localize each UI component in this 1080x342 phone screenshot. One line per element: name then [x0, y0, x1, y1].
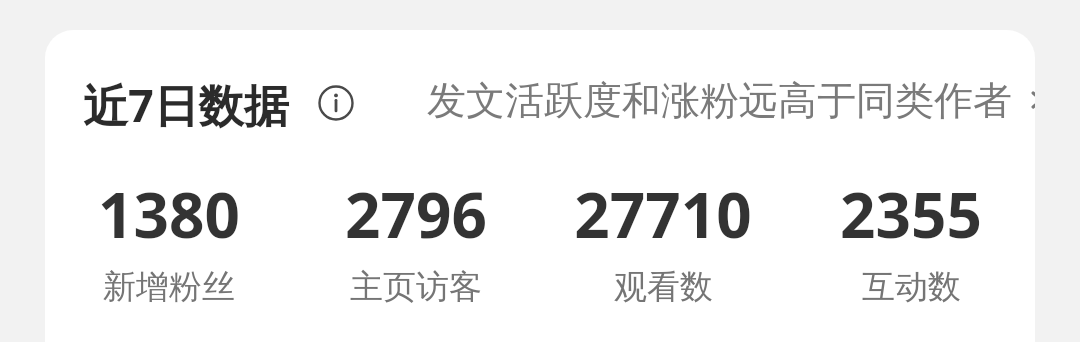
- staticText: 2355: [840, 172, 982, 256]
- button[interactable]: 发文活跃度和涨粉远高于同类作者: [427, 30, 1035, 170]
- staticText: 新增粉丝: [103, 266, 235, 308]
- button[interactable]: 27710: [539, 170, 787, 308]
- staticText: 近7日数据: [83, 74, 289, 135]
- staticText: 观看数: [614, 266, 713, 308]
- staticText: 发文活跃度和涨粉远高于同类作者: [427, 76, 1012, 125]
- button[interactable]: 2796: [292, 170, 539, 308]
- staticText: 主页访客: [350, 266, 482, 308]
- staticText: 互动数: [862, 266, 961, 308]
- staticText: 1380: [98, 172, 240, 256]
- staticText: 27710: [574, 172, 752, 256]
- button[interactable]: 2355: [787, 170, 1035, 308]
- button[interactable]: 近7日数据: [45, 30, 1035, 342]
- button[interactable]: 1380: [45, 170, 292, 308]
- button[interactable]: 说明: [316, 83, 356, 123]
- staticText: 2796: [345, 172, 487, 256]
